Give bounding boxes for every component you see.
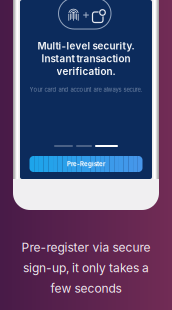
staticText: Pre-register via secure (21, 240, 150, 254)
staticText: Pre-Register (67, 160, 105, 168)
button[interactable]: Pre-Register (29, 156, 142, 172)
staticText: sign-up, it only takes a (23, 260, 149, 275)
staticText: Multi-level security. (37, 40, 134, 52)
staticText: Your card and account are always secure. (29, 86, 142, 93)
staticText: Instant transaction (41, 53, 130, 65)
staticText: verification. (56, 65, 115, 77)
staticText: few seconds (50, 281, 121, 295)
